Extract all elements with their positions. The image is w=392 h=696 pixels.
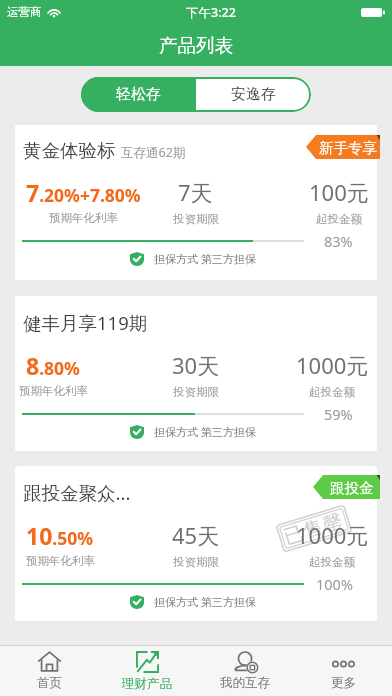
staticText: 投资期限 (173, 555, 219, 569)
staticText: 100% (316, 574, 353, 594)
staticText: 担保方式 第三方担保 (154, 251, 256, 266)
staticText: 首页 (37, 675, 62, 691)
button[interactable]: 跟投金 (313, 475, 380, 499)
staticText: 健丰月享119期 (23, 310, 148, 335)
staticText: 起投金额 (309, 385, 355, 399)
staticText: 担保方式 第三方担保 (154, 594, 256, 609)
staticText: 我的互存 (220, 675, 270, 691)
button[interactable]: 安逸存 (196, 77, 311, 112)
staticText: 理财产品 (122, 676, 172, 692)
staticText: 100元 (309, 177, 369, 207)
staticText: 安逸存 (231, 85, 276, 104)
button[interactable]: 黄金体验标 (15, 125, 377, 280)
staticText: 产品列表 (159, 34, 233, 57)
button[interactable]: 新手专享 (306, 135, 380, 159)
button[interactable]: 轻松存 (81, 77, 196, 112)
staticText: 45天 (172, 520, 220, 550)
staticText: 跟投金聚众... (23, 480, 131, 505)
staticText: 预期年化利率 (19, 384, 88, 398)
staticText: 83% (324, 231, 353, 251)
staticText: 下午3:22 (186, 4, 236, 21)
staticText: 运营商 (7, 5, 42, 19)
button[interactable]: 理财产品 (98, 646, 196, 696)
button[interactable]: 健丰月享119期 (15, 296, 377, 451)
staticText: 轻松存 (116, 85, 161, 104)
staticText: 互存通62期 (121, 144, 186, 161)
staticText: 起投金额 (309, 555, 355, 569)
staticText: 跟投金 (330, 479, 374, 497)
staticText: 8.80% (26, 350, 80, 381)
staticText: 新手专享 (319, 139, 377, 157)
staticText: 30天 (172, 350, 220, 380)
staticText: 担保方式 第三方担保 (154, 424, 256, 439)
staticText: 预期年化利率 (26, 554, 95, 568)
staticText: 更多 (331, 675, 356, 691)
staticText: 1000元 (296, 350, 369, 380)
button[interactable]: 更多 (294, 646, 392, 696)
staticText: 已售罄 (281, 508, 347, 549)
button[interactable]: 我的互存 (196, 646, 294, 696)
staticText: 59% (324, 404, 353, 424)
staticText: 1000元 (296, 520, 369, 550)
staticText: 黄金体验标 (23, 139, 116, 162)
staticText: 7天 (178, 177, 213, 207)
staticText: 投资期限 (173, 212, 219, 226)
button[interactable]: 首页 (0, 646, 98, 696)
staticText: 10.50% (26, 520, 94, 551)
staticText: 起投金额 (316, 212, 362, 226)
staticText: 预期年化利率 (49, 211, 118, 225)
button[interactable]: 已售罄 (15, 466, 377, 621)
staticText: 投资期限 (173, 385, 219, 399)
staticText: 7.20%+7.80% (26, 177, 141, 208)
